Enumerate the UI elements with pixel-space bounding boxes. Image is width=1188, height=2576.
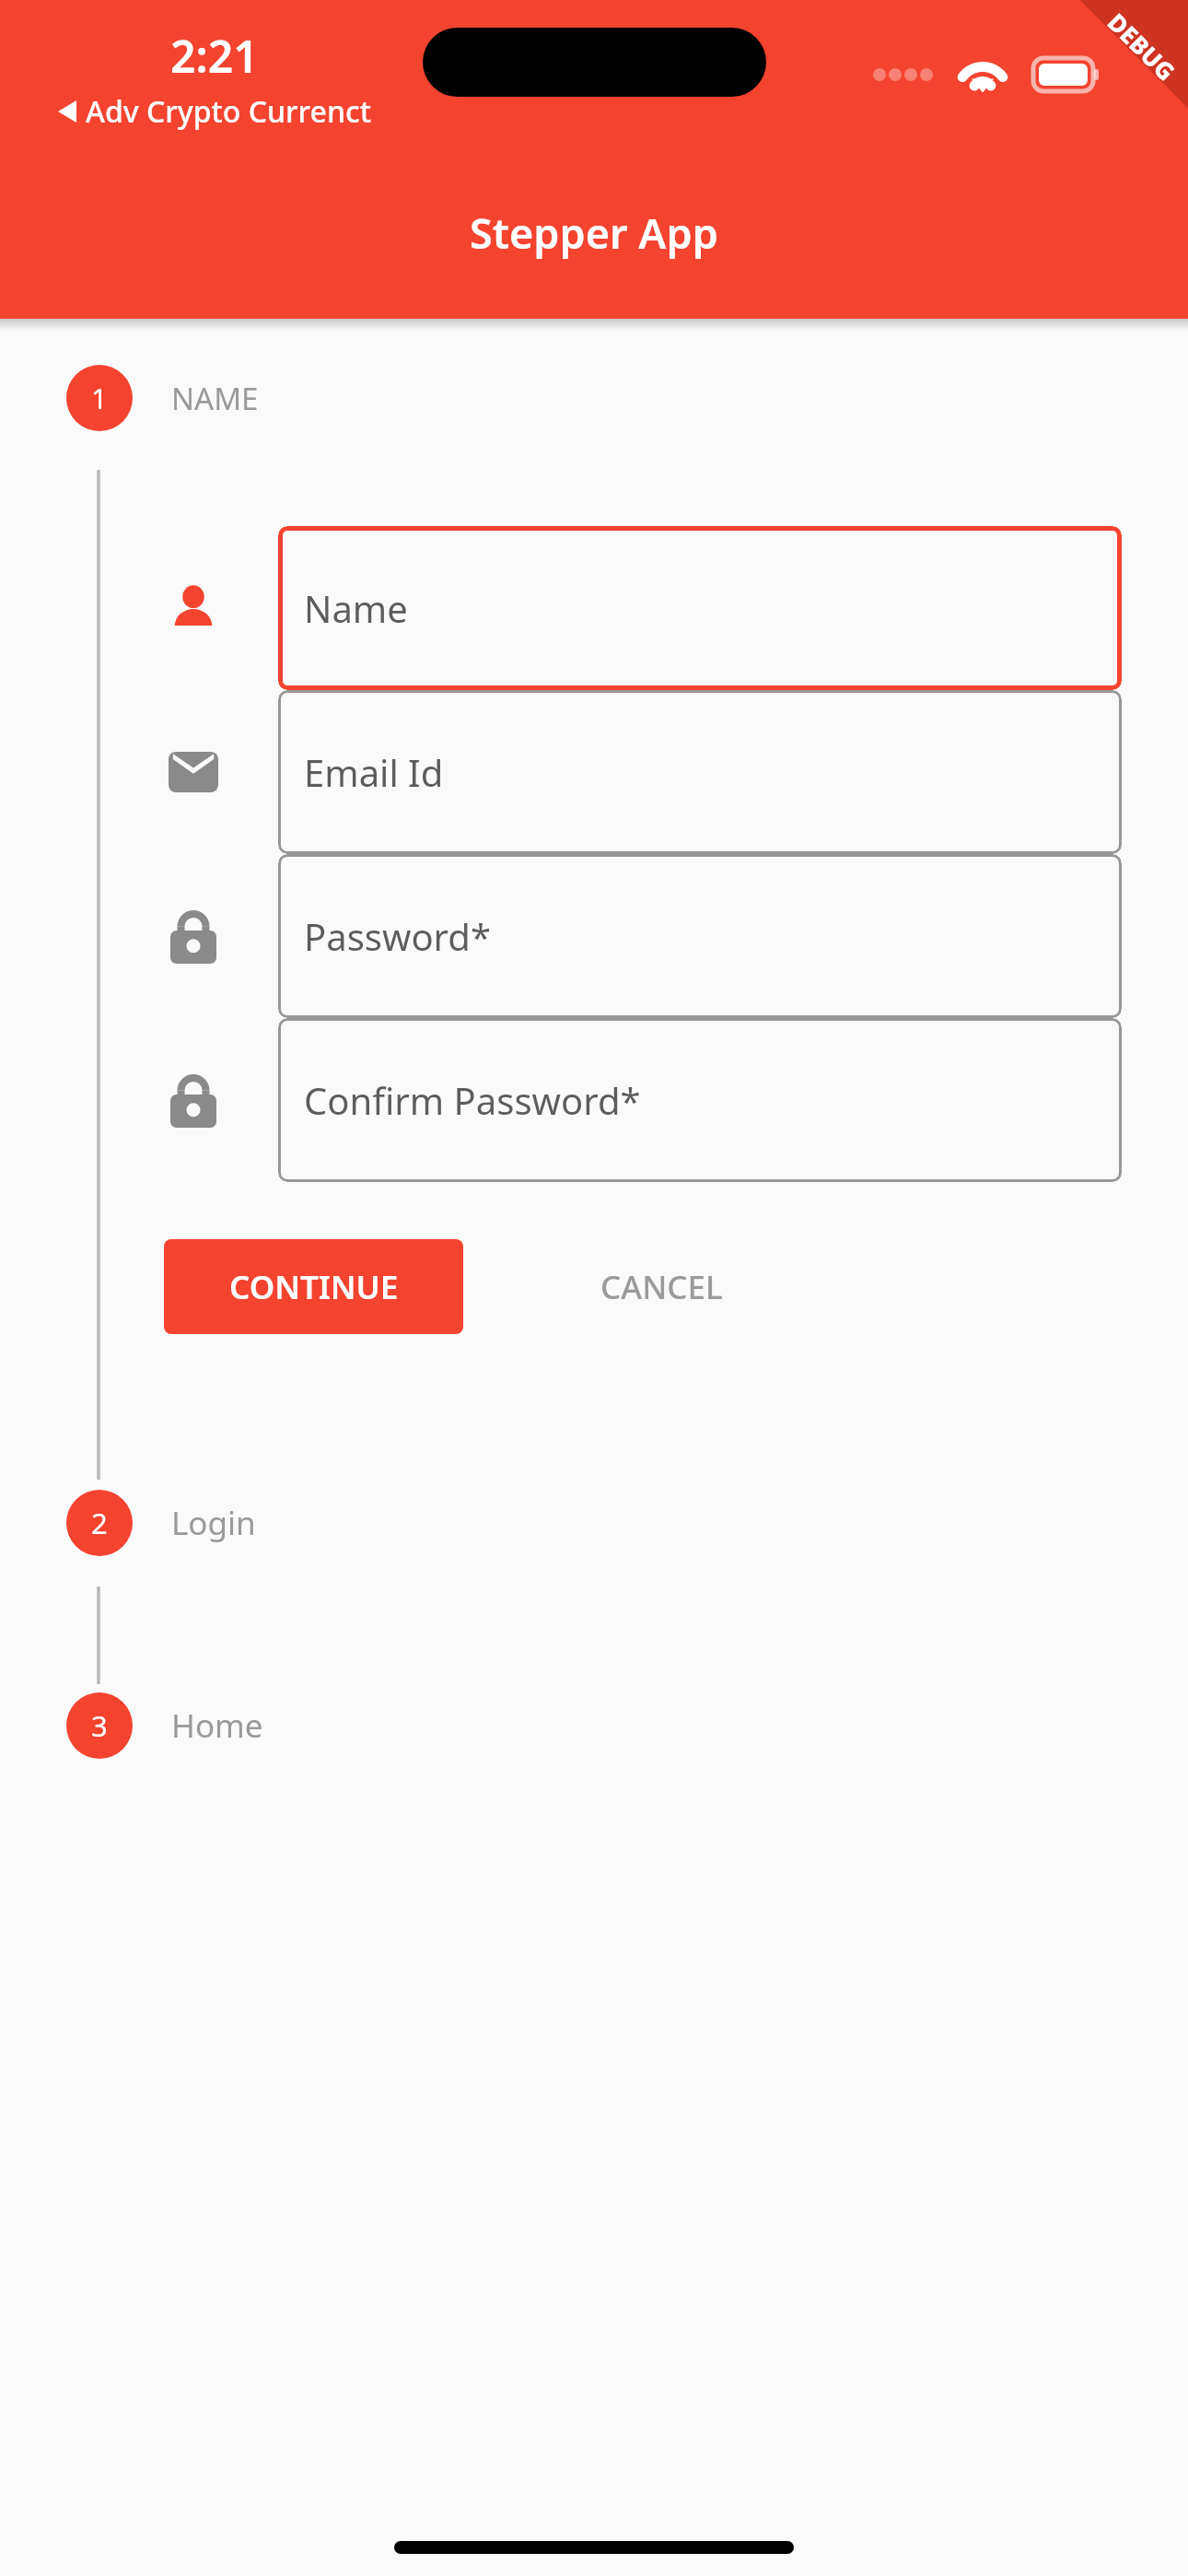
staticText: 2:21: [170, 26, 259, 86]
button[interactable]: Confirm Password*: [278, 1018, 1122, 1182]
staticText: DEBUG: [1101, 6, 1183, 87]
button[interactable]: CONTINUE: [164, 1239, 463, 1334]
staticText: Password*: [304, 911, 491, 961]
button[interactable]: 3: [66, 1692, 263, 1759]
button[interactable]: Email Id: [278, 690, 1122, 854]
staticText: Name: [304, 583, 408, 633]
staticText: NAME: [171, 378, 259, 419]
button[interactable]: 2: [66, 1490, 256, 1556]
button[interactable]: CANCEL: [553, 1239, 770, 1334]
other: Name: [164, 579, 223, 638]
staticText: Adv Crypto Currenct: [86, 91, 371, 132]
staticText: 3: [91, 1706, 108, 1745]
other: Password: [164, 907, 223, 966]
other: Password: [164, 1071, 223, 1130]
button[interactable]: 1: [66, 365, 259, 431]
staticText: Stepper App: [470, 205, 718, 261]
staticText: CANCEL: [600, 1265, 723, 1309]
button[interactable]: Name: [278, 526, 1122, 690]
staticText: Home: [171, 1704, 263, 1748]
staticText: Login: [171, 1501, 256, 1545]
staticText: CONTINUE: [229, 1265, 399, 1309]
staticText: Confirm Password*: [304, 1075, 641, 1125]
button[interactable]: Password*: [278, 854, 1122, 1018]
other: Email: [164, 743, 223, 802]
staticText: 2: [91, 1504, 108, 1542]
staticText: 1: [91, 379, 108, 417]
staticText: Email Id: [304, 747, 444, 797]
